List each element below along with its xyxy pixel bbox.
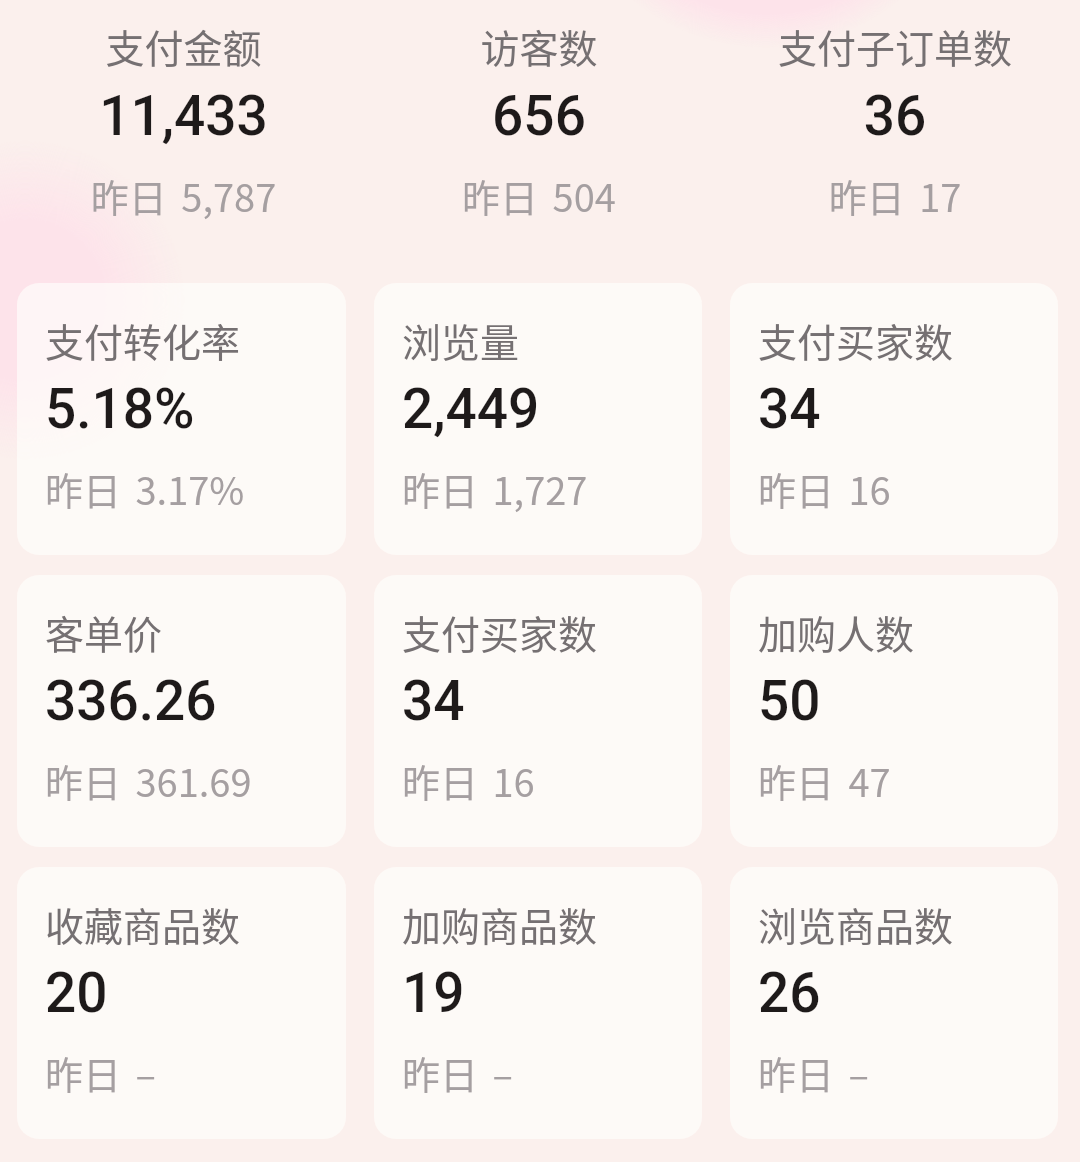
staticText: 昨日 16 [402,753,535,808]
staticText: 昨日 504 [361,168,717,223]
button[interactable]: 收藏商品数 [17,867,346,1139]
staticText: 2,449 [402,377,540,441]
staticText: 昨日 – [45,1045,156,1100]
staticText: 5.18% [45,377,195,441]
staticText: 36 [717,84,1073,148]
staticText: 昨日 16 [758,461,891,516]
staticText: 11,433 [6,84,361,148]
button[interactable]: 支付买家数 [730,283,1058,555]
staticText: 26 [758,961,821,1025]
staticText: 浏览量 [402,312,520,368]
button[interactable]: 支付子订单数 [717,0,1073,64]
button[interactable]: 支付金额 [6,0,361,64]
staticText: 656 [361,84,717,148]
button[interactable]: 支付买家数 [374,575,702,847]
staticText: 昨日 3.17% [45,461,245,516]
staticText: 支付金额 [6,18,361,74]
staticText: 34 [402,669,465,733]
staticText: 昨日 17 [717,168,1073,223]
staticText: 336.26 [45,669,217,733]
staticText: 支付买家数 [402,604,598,660]
staticText: 支付子订单数 [717,18,1073,74]
button[interactable]: 访客数 [361,0,717,64]
staticText: 支付买家数 [758,312,954,368]
staticText: 昨日 361.69 [45,753,252,808]
staticText: 加购商品数 [402,896,598,952]
button[interactable]: 客单价 [17,575,346,847]
staticText: 昨日 5,787 [6,168,361,223]
staticText: 20 [45,961,108,1025]
staticText: 19 [402,961,465,1025]
button[interactable]: 加购商品数 [374,867,702,1139]
staticText: 支付转化率 [45,312,241,368]
staticText: 昨日 – [402,1045,513,1100]
staticText: 加购人数 [758,604,915,660]
staticText: 昨日 – [758,1045,869,1100]
button[interactable]: 浏览商品数 [730,867,1058,1139]
staticText: 50 [758,669,821,733]
staticText: 访客数 [361,18,717,74]
staticText: 收藏商品数 [45,896,241,952]
staticText: 浏览商品数 [758,896,954,952]
staticText: 34 [758,377,821,441]
button[interactable]: 支付转化率 [17,283,346,555]
button[interactable]: 浏览量 [374,283,702,555]
staticText: 昨日 47 [758,753,891,808]
button[interactable]: 加购人数 [730,575,1058,847]
staticText: 客单价 [45,604,163,660]
staticText: 昨日 1,727 [402,461,588,516]
